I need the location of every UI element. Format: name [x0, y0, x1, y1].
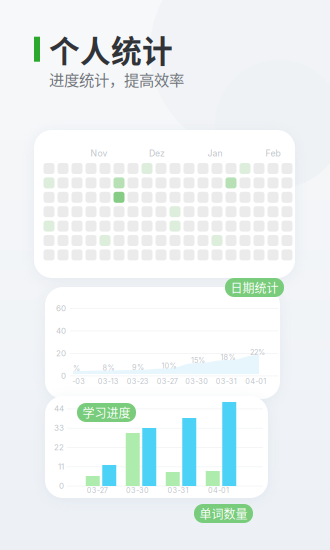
button[interactable]: 日期统计 — [225, 278, 284, 297]
staticText: Jan — [207, 148, 222, 158]
button[interactable]: 学习进度 — [77, 403, 136, 422]
staticText: % — [73, 364, 80, 373]
staticText: 44 — [54, 404, 64, 413]
staticText: 进度统计，提高效率 — [49, 68, 184, 90]
staticText: 18% — [220, 353, 235, 362]
staticText: 22 — [54, 442, 64, 452]
staticText: 20 — [56, 348, 66, 358]
staticText: 11 — [58, 462, 64, 471]
button[interactable]: 单词数量 — [194, 504, 253, 523]
staticText: 0 — [59, 481, 64, 491]
staticText: 03-31 — [216, 377, 237, 386]
staticText: 03-23 — [127, 377, 149, 386]
staticText: 9% — [132, 363, 144, 372]
staticText: 03-30 — [185, 377, 208, 386]
staticText: 33 — [54, 423, 64, 433]
staticText: 10% — [161, 361, 176, 370]
staticText: 03-30 — [126, 486, 149, 495]
staticText: 03-27 — [87, 486, 108, 495]
staticText: 03-31 — [167, 486, 188, 495]
staticText: 22% — [250, 348, 265, 357]
staticText: 学习进度 — [82, 404, 130, 421]
staticText: 60 — [56, 303, 66, 313]
staticText: 单词数量 — [199, 505, 247, 522]
staticText: Feb — [265, 148, 280, 158]
staticText: 日期统计 — [230, 279, 278, 296]
staticText: 15% — [191, 356, 205, 365]
staticText: 03-27 — [157, 377, 178, 386]
staticText: 个人统计 — [49, 27, 173, 71]
staticText: 8% — [102, 363, 114, 372]
staticText: 04-01 — [208, 486, 229, 495]
staticText: 04-01 — [245, 377, 266, 386]
staticText: -03 — [72, 377, 85, 386]
staticText: Dez — [149, 148, 165, 158]
staticText: 40 — [56, 326, 66, 336]
staticText: 03-13 — [98, 377, 119, 386]
staticText: Nov — [90, 148, 107, 158]
staticText: 0 — [61, 371, 66, 381]
